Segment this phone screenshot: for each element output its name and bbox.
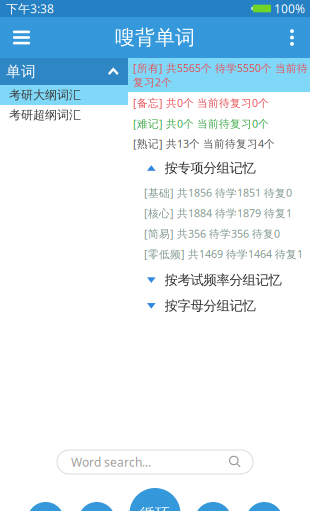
button[interactable]: [核心] 共1884 待学1879 待复1 — [128, 203, 310, 223]
staticText: 按专项分组记忆 — [165, 160, 256, 176]
staticText: 循环 — [140, 504, 170, 511]
staticText: [备忘] 共0个 当前待复习0个 — [133, 96, 269, 110]
button[interactable]: [熟记] 共13个 当前待复习4个 — [128, 133, 310, 153]
staticText: 考研超纲词汇 — [9, 108, 81, 122]
button[interactable]: 按专项分组记忆 — [128, 153, 310, 182]
button[interactable]: [简易] 共356 待学356 待复0 — [128, 223, 310, 244]
button[interactable]: 增强 — [246, 502, 283, 511]
staticText: [基础] 共1856 待学1851 待复0 — [144, 186, 292, 200]
staticText: 单词 — [6, 62, 36, 80]
button[interactable]: 按字母分组记忆 — [128, 293, 310, 319]
button[interactable]: [难记] 共0个 当前待复习0个 — [128, 113, 310, 133]
staticText: 考研大纲词汇 — [9, 88, 81, 102]
staticText: [简易] 共356 待学356 待复0 — [144, 226, 280, 241]
staticText: [零低频] 共1469 待学1464 待复1 — [144, 247, 303, 261]
staticText: 100% — [274, 0, 305, 16]
button[interactable]: [所有] 共5565个 待学5550个 当前待复习2个 — [128, 58, 310, 92]
button[interactable]: 考研超纲词汇 — [0, 105, 128, 125]
button[interactable]: 循环 — [129, 488, 180, 511]
button[interactable]: 按考试频率分组记忆 — [128, 267, 310, 293]
staticText: [核心] 共1884 待学1879 待复1 — [144, 206, 292, 220]
button[interactable]: 考研大纲词汇 — [0, 85, 128, 105]
button[interactable]: 增删 — [27, 502, 64, 511]
staticText: 按字母分组记忆 — [165, 298, 256, 314]
staticText: 按考试频率分组记忆 — [165, 272, 282, 288]
button[interactable]: 停止 — [195, 502, 232, 511]
staticText: Word search... — [71, 454, 151, 470]
staticText: 下午3:38 — [6, 0, 54, 16]
staticText: 嗖背单词 — [115, 25, 195, 50]
button[interactable]: [备忘] 共0个 当前待复习0个 — [128, 92, 310, 113]
button[interactable]: [零低频] 共1469 待学1464 待复1 — [128, 244, 310, 264]
button[interactable]: [基础] 共1856 待学1851 待复0 — [128, 182, 310, 203]
staticText: [所有] 共5565个 待学5550个 当前待复习2个 — [133, 61, 308, 89]
staticText: [难记] 共0个 当前待复习0个 — [133, 116, 269, 131]
staticText: [熟记] 共13个 当前待复习4个 — [133, 136, 275, 151]
button[interactable]: 学习 — [78, 502, 115, 511]
button[interactable]: 单词 — [0, 58, 128, 85]
button[interactable]: Menu — [0, 17, 43, 58]
button[interactable]: More options — [274, 17, 310, 58]
